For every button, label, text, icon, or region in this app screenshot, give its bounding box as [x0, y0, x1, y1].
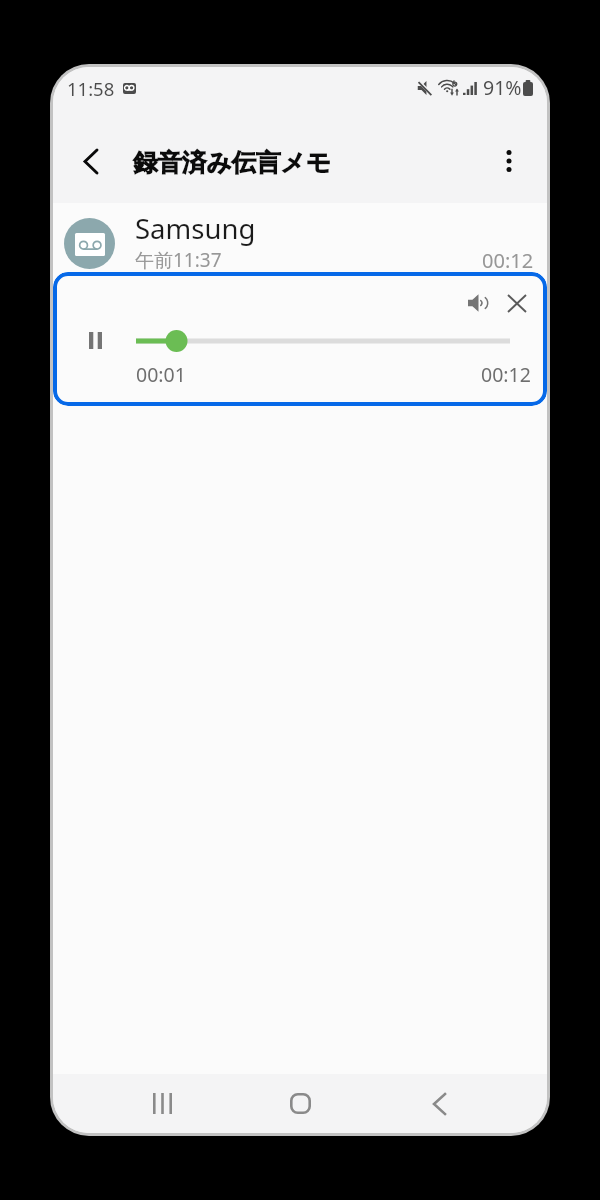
button[interactable]: Back: [409, 1074, 469, 1133]
staticText: 録音済み伝言メモ: [133, 147, 331, 178]
button[interactable]: Navigate up: [67, 137, 115, 185]
staticText: 00:01: [136, 361, 186, 388]
staticText: 91%: [483, 74, 522, 101]
button[interactable]: Pause: [79, 324, 111, 356]
staticText: 00:12: [482, 247, 534, 274]
staticText: Samsung: [135, 210, 256, 247]
button[interactable]: Close: [503, 289, 531, 317]
button[interactable]: Home: [270, 1074, 330, 1133]
staticText: 00:12: [481, 361, 531, 388]
staticText: 11:58: [67, 76, 115, 101]
button[interactable]: Speaker: [464, 289, 492, 317]
button[interactable]: Recents: [132, 1074, 192, 1133]
button[interactable]: More options: [485, 137, 533, 185]
button[interactable]: Samsung: [53, 203, 547, 272]
staticText: 午前11:37: [135, 247, 222, 273]
